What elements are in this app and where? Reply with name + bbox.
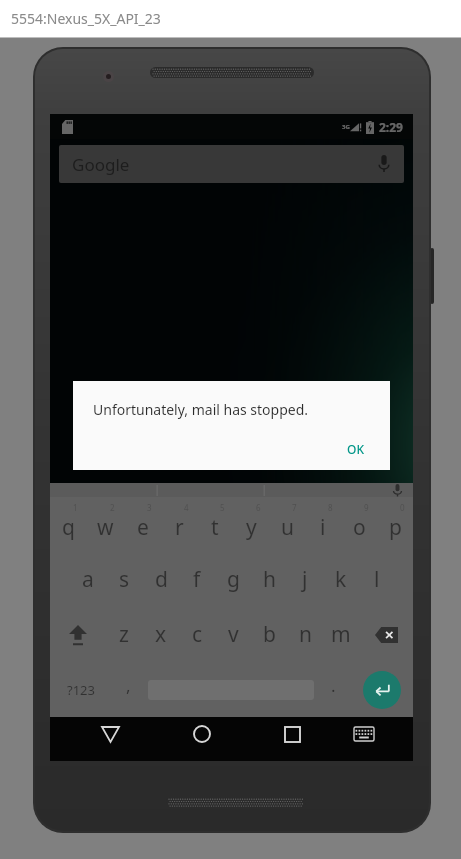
button[interactable]: x [142, 607, 179, 662]
staticText: n [299, 620, 312, 649]
button[interactable]: ?123 [50, 662, 111, 717]
staticText: 3 [147, 502, 152, 513]
staticText: j [302, 565, 308, 594]
staticText: 5 [220, 502, 225, 513]
button[interactable]: n [287, 607, 323, 662]
staticText: p [389, 513, 402, 542]
staticText: x [155, 620, 167, 649]
button[interactable]: OK [337, 434, 374, 464]
button[interactable]: 8 [305, 497, 341, 552]
staticText: Unfortunately, mail has stopped. [93, 400, 309, 419]
staticText: 2 [110, 502, 115, 513]
staticText: . [331, 674, 336, 697]
staticText: z [119, 620, 129, 649]
staticText: c [192, 620, 203, 649]
button[interactable]: c [179, 607, 215, 662]
staticText: i [320, 513, 326, 542]
staticText: OK [347, 441, 364, 457]
staticText: 6 [256, 502, 261, 513]
staticText: 7 [292, 502, 297, 513]
staticText: h [263, 565, 276, 594]
button[interactable]: 9 [341, 497, 377, 552]
button[interactable]: 2 [87, 497, 124, 552]
button[interactable]: Enter [363, 671, 401, 709]
button[interactable]: 1 [50, 497, 87, 552]
button[interactable]: m [323, 607, 359, 662]
button[interactable]: Home [172, 717, 231, 751]
staticText: k [335, 565, 347, 594]
staticText: w [97, 513, 114, 542]
staticText: r [175, 513, 184, 542]
staticText: v [228, 620, 239, 649]
button[interactable]: Shift [50, 607, 105, 662]
button[interactable]: Switch keyboard [334, 717, 393, 751]
staticText: Google [72, 153, 130, 176]
staticText: t [211, 513, 219, 542]
button[interactable]: Backspace [359, 607, 413, 662]
staticText: 8 [328, 502, 333, 513]
staticText: g [227, 565, 240, 594]
other: Voice input [393, 484, 402, 497]
staticText: m [331, 620, 351, 649]
button[interactable]: a [69, 552, 106, 607]
button[interactable]: 5 [197, 497, 233, 552]
staticText: y [246, 513, 257, 542]
staticText: a [82, 565, 94, 594]
button[interactable]: 3 [124, 497, 161, 552]
staticText: u [281, 513, 294, 542]
other: Voice search [378, 155, 390, 173]
staticText: 5554:Nexus_5X_API_23 [11, 9, 161, 28]
button[interactable]: Back [81, 717, 140, 751]
staticText: 3G [342, 123, 350, 131]
button[interactable]: g [215, 552, 251, 607]
staticText: o [353, 513, 366, 542]
button[interactable]: l [359, 552, 395, 607]
button[interactable]: 7 [269, 497, 305, 552]
button[interactable]: b [251, 607, 287, 662]
button[interactable]: d [143, 552, 179, 607]
button[interactable]: Google [59, 145, 404, 183]
staticText: ?123 [67, 681, 95, 699]
button[interactable]: v [215, 607, 251, 662]
button[interactable]: 6 [233, 497, 269, 552]
staticText: e [137, 513, 149, 542]
staticText: 2:29 [379, 119, 403, 135]
button[interactable]: Recent apps [263, 717, 322, 751]
button[interactable]: 4 [161, 497, 197, 552]
button[interactable]: z [105, 607, 142, 662]
staticText: 4 [184, 502, 189, 513]
staticText: 9 [364, 502, 369, 513]
button[interactable]: h [251, 552, 287, 607]
staticText: 0 [400, 502, 405, 513]
button[interactable]: s [106, 552, 143, 607]
staticText: f [193, 565, 201, 594]
staticText: l [374, 565, 380, 594]
staticText: q [62, 513, 75, 542]
button[interactable]: k [323, 552, 359, 607]
staticText: s [119, 565, 130, 594]
button[interactable]: j [287, 552, 323, 607]
staticText: d [155, 565, 168, 594]
button[interactable]: f [179, 552, 215, 607]
staticText: , [126, 674, 131, 697]
staticText: b [263, 620, 276, 649]
button[interactable]: 0 [377, 497, 413, 552]
staticText: 1 [73, 502, 78, 513]
